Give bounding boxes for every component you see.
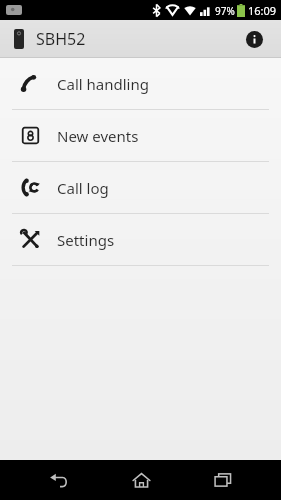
staticText: Settings: [57, 230, 115, 250]
staticText: SBH52: [36, 28, 86, 50]
button[interactable]: Back: [34, 460, 82, 500]
staticText: 97%: [215, 4, 235, 18]
button[interactable]: Settings: [0, 214, 281, 265]
staticText: Call log: [57, 178, 109, 198]
staticText: 16:09: [248, 3, 277, 18]
staticText: New events: [57, 126, 139, 146]
button[interactable]: Call handling: [0, 58, 281, 109]
staticText: Call handling: [57, 74, 149, 94]
button[interactable]: Call log: [0, 162, 281, 213]
button[interactable]: Home: [117, 460, 165, 500]
button[interactable]: New events: [0, 110, 281, 161]
button[interactable]: Recent apps: [199, 460, 247, 500]
button[interactable]: Information: [239, 24, 269, 54]
